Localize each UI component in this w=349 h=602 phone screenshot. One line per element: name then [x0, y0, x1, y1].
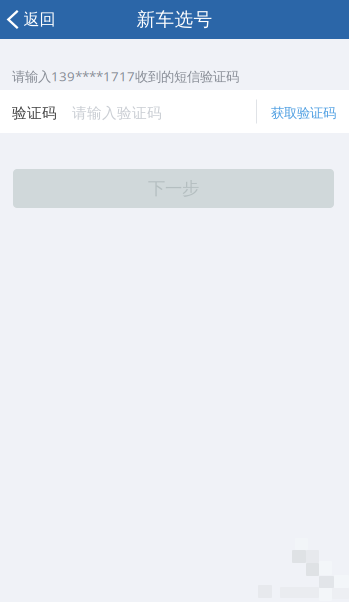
staticText: 请输入验证码: [72, 104, 162, 122]
staticText: 新车选号: [136, 8, 212, 31]
button[interactable]: 验证码: [0, 90, 256, 133]
button[interactable]: 返回: [0, 0, 65, 39]
staticText: 请输入139****1717收到的短信验证码: [12, 67, 239, 85]
staticText: 下一步: [148, 178, 199, 199]
staticText: 获取验证码: [271, 105, 336, 121]
staticText: 返回: [23, 10, 55, 29]
staticText: 验证码: [12, 104, 57, 122]
button[interactable]: 获取验证码: [257, 90, 349, 133]
